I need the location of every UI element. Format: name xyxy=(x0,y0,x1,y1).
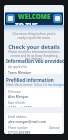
staticText: Please check the information below is co… xyxy=(8,50,60,61)
button[interactable]: Email address xyxy=(6,113,62,134)
button[interactable]: Job applied for xyxy=(6,63,62,74)
staticText: Team Member xyxy=(8,70,32,74)
button[interactable]: Full name xyxy=(6,88,62,107)
staticText: Job applied for xyxy=(8,65,28,69)
staticText: TO THE TEAM! xyxy=(15,21,53,25)
staticText: Alex Morgan xyxy=(8,94,29,99)
staticText: Check this is correct. xyxy=(6,83,34,87)
staticText: WELCOME xyxy=(18,12,51,21)
staticText: Phone number xyxy=(8,126,28,130)
staticText: Optional xyxy=(49,126,60,130)
staticText: Check your details xyxy=(4,43,64,51)
staticText: Information you provided xyxy=(6,58,64,64)
staticText: Full name xyxy=(8,90,21,94)
staticText: alex.morgan@mail.com xyxy=(8,119,47,124)
staticText: 07123 456789 xyxy=(8,130,31,134)
staticText: Email address xyxy=(8,115,27,119)
staticText: Date of birth xyxy=(8,101,25,105)
staticText: One more thing before you're ready to jo… xyxy=(9,32,59,40)
button[interactable]: Welcome to the team xyxy=(5,12,63,25)
staticText: Tell us if it has changed. xyxy=(34,83,64,87)
staticText: Prefilled information xyxy=(6,77,54,83)
staticText: 14 March 1998 xyxy=(8,105,32,107)
